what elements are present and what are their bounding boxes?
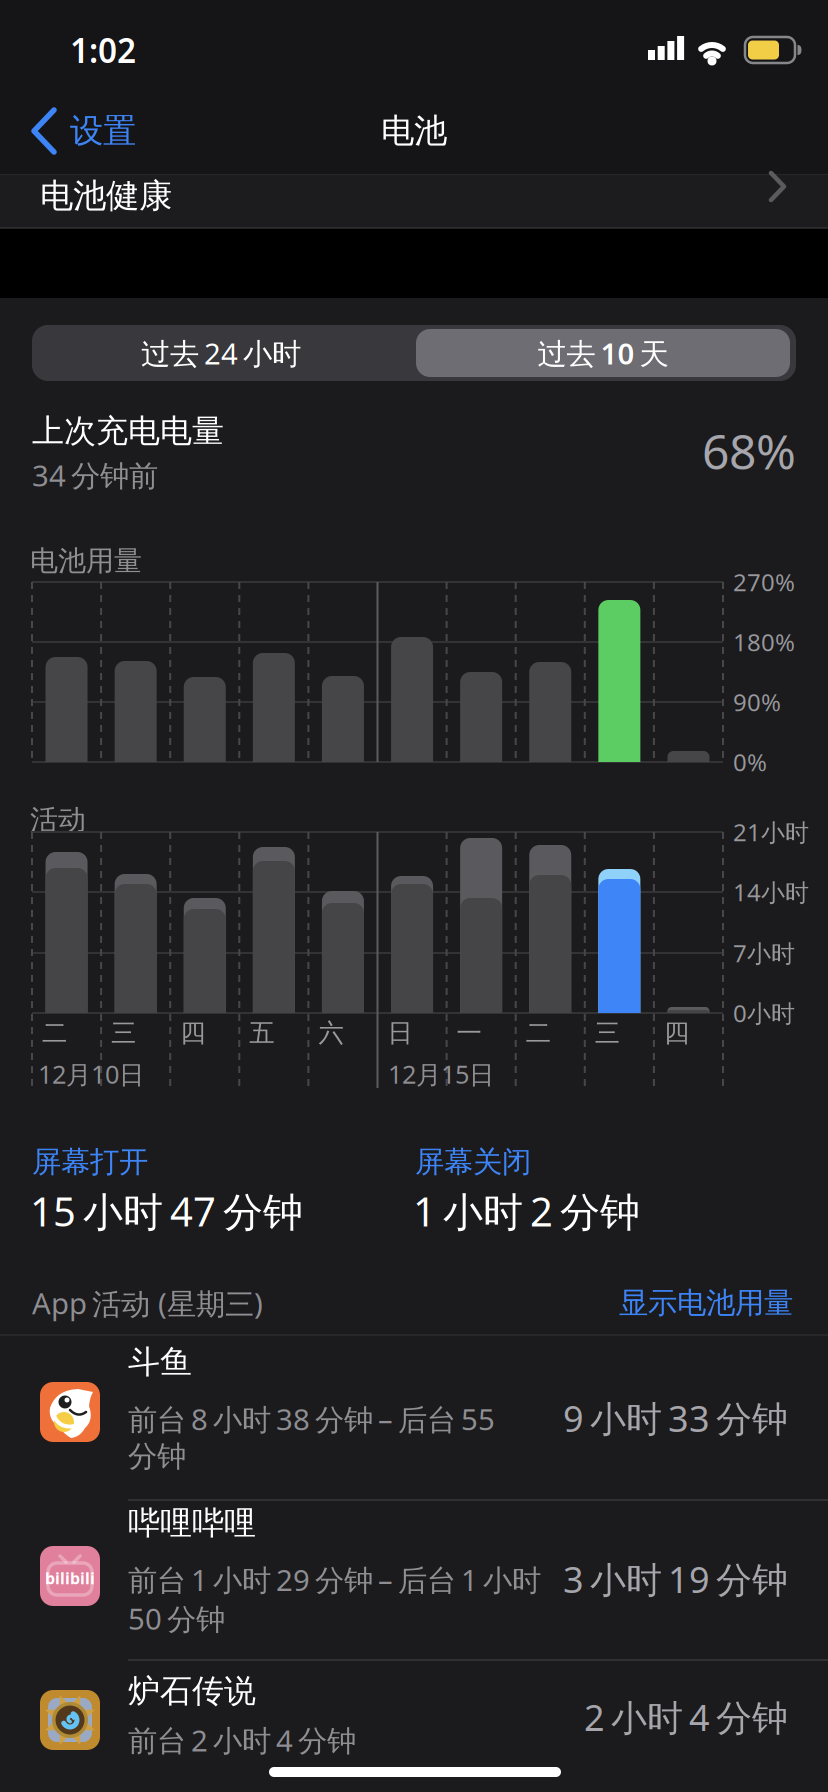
staticText: 68% (702, 419, 796, 483)
staticText: 14小时 (733, 876, 809, 908)
staticText: 过去 24 小时 (141, 333, 301, 372)
staticText: 1 小时 2 分钟 (413, 1184, 640, 1237)
staticText: 活动 (30, 803, 86, 837)
staticText: 屏幕打开 (32, 1144, 148, 1180)
staticText: 90% (733, 686, 781, 718)
staticText: 180% (733, 626, 795, 658)
staticText: 设置 (70, 110, 136, 151)
staticText: 前台 2 小时 4 分钟 (128, 1720, 356, 1759)
staticText: 三 (595, 1017, 620, 1048)
button[interactable]: 过去 24 小时 (32, 325, 410, 381)
staticText: 五 (249, 1017, 274, 1048)
staticText: 三 (111, 1017, 136, 1048)
staticText: 四 (664, 1017, 689, 1048)
staticText: 9 小时 33 分钟 (563, 1394, 788, 1442)
staticText: 屏幕关闭 (415, 1144, 531, 1180)
staticText: 3 小时 19 分钟 (563, 1555, 788, 1603)
staticText: 前台 8 小时 38 分钟 – 后台 55 分钟 (128, 1399, 495, 1474)
staticText: 六 (318, 1017, 343, 1048)
staticText: 斗鱼 (128, 1342, 192, 1382)
staticText: 显示电池用量 (619, 1285, 793, 1321)
staticText: 0% (733, 746, 767, 778)
staticText: 前台 1 小时 29 分钟 – 后台 1 小时 50 分钟 (128, 1560, 541, 1638)
button[interactable]: 炉石传说 (0, 1660, 828, 1792)
staticText: 电池健康 (40, 175, 172, 216)
staticText: 电池 (381, 110, 447, 151)
staticText: 过去 10 天 (537, 333, 668, 372)
staticText: 哔哩哔哩 (128, 1503, 256, 1543)
staticText: App 活动 (星期三) (32, 1283, 263, 1322)
button[interactable]: 电池健康 (0, 175, 828, 228)
button[interactable]: bilibili (0, 1500, 828, 1660)
staticText: 12月10日 (38, 1057, 144, 1091)
staticText: 270% (733, 566, 795, 598)
staticText: 一 (457, 1017, 482, 1048)
staticText: 2 小时 4 分钟 (584, 1693, 788, 1741)
staticText: 日 (387, 1017, 412, 1048)
staticText: 二 (42, 1017, 67, 1048)
staticText: 1:02 (70, 28, 136, 72)
button[interactable]: 显示电池用量 (619, 1285, 793, 1321)
staticText: 炉石传说 (128, 1671, 256, 1711)
staticText: 7小时 (733, 937, 795, 969)
staticText: 12月15日 (388, 1057, 494, 1091)
staticText: 四 (180, 1017, 205, 1048)
staticText: bilibili (45, 1567, 95, 1589)
staticText: 二 (526, 1017, 551, 1048)
staticText: 电池用量 (30, 544, 142, 578)
staticText: 上次充电电量 (32, 411, 224, 451)
staticText: 0小时 (733, 997, 795, 1029)
staticText: 21小时 (733, 816, 809, 848)
button[interactable]: 过去 10 天 (416, 329, 790, 377)
staticText: 34 分钟前 (32, 455, 158, 494)
button[interactable]: 设置 (30, 106, 136, 156)
button[interactable]: 斗鱼 (0, 1335, 828, 1500)
staticText: 15 小时 47 分钟 (30, 1184, 303, 1237)
